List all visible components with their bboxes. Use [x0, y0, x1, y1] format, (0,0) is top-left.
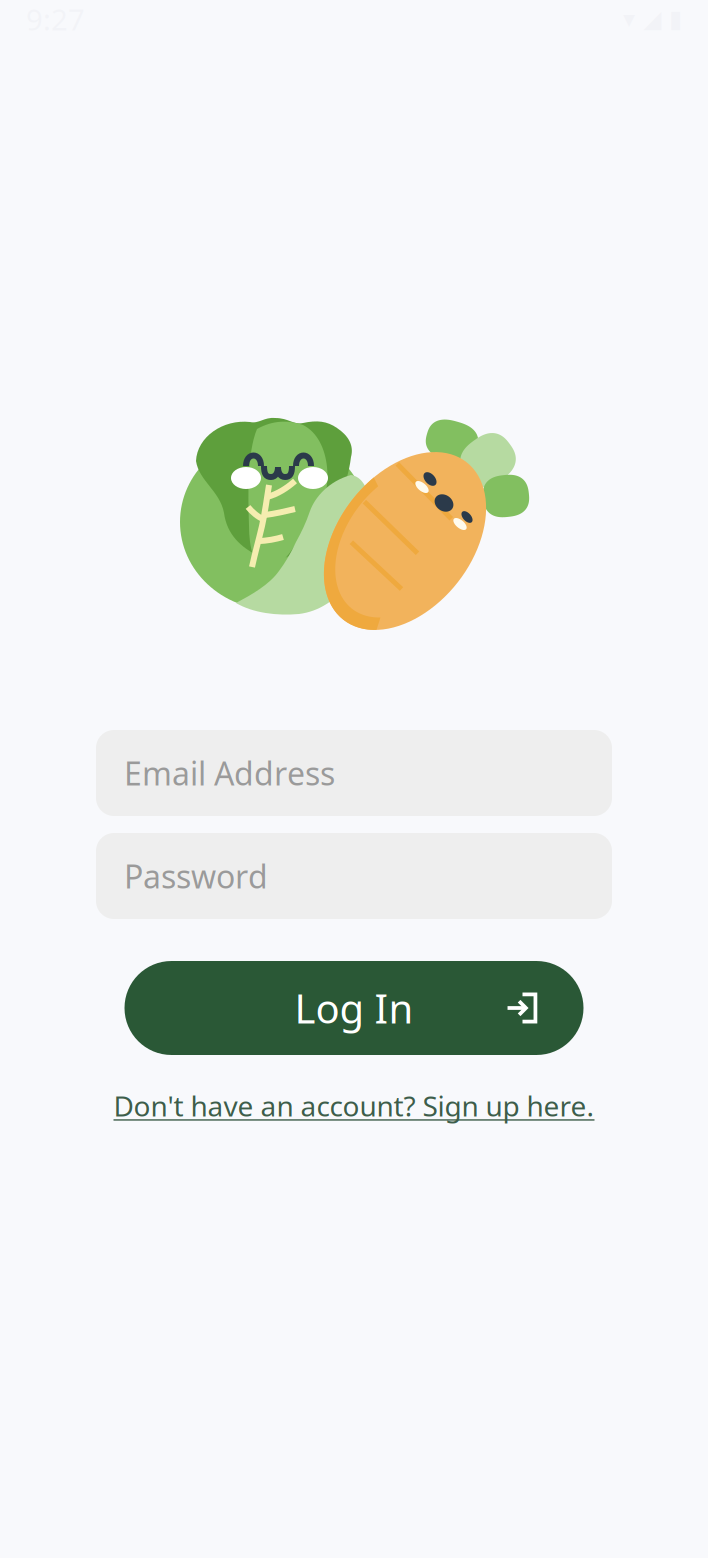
staticText: Password — [124, 855, 268, 897]
button[interactable]: Don't have an account? Sign up here. — [113, 1087, 594, 1124]
staticText: Email Address — [124, 752, 335, 794]
staticText: Don't have an account? Sign up here. — [113, 1087, 594, 1124]
staticText: Log In — [294, 981, 413, 1034]
button[interactable]: Log In — [124, 961, 583, 1055]
